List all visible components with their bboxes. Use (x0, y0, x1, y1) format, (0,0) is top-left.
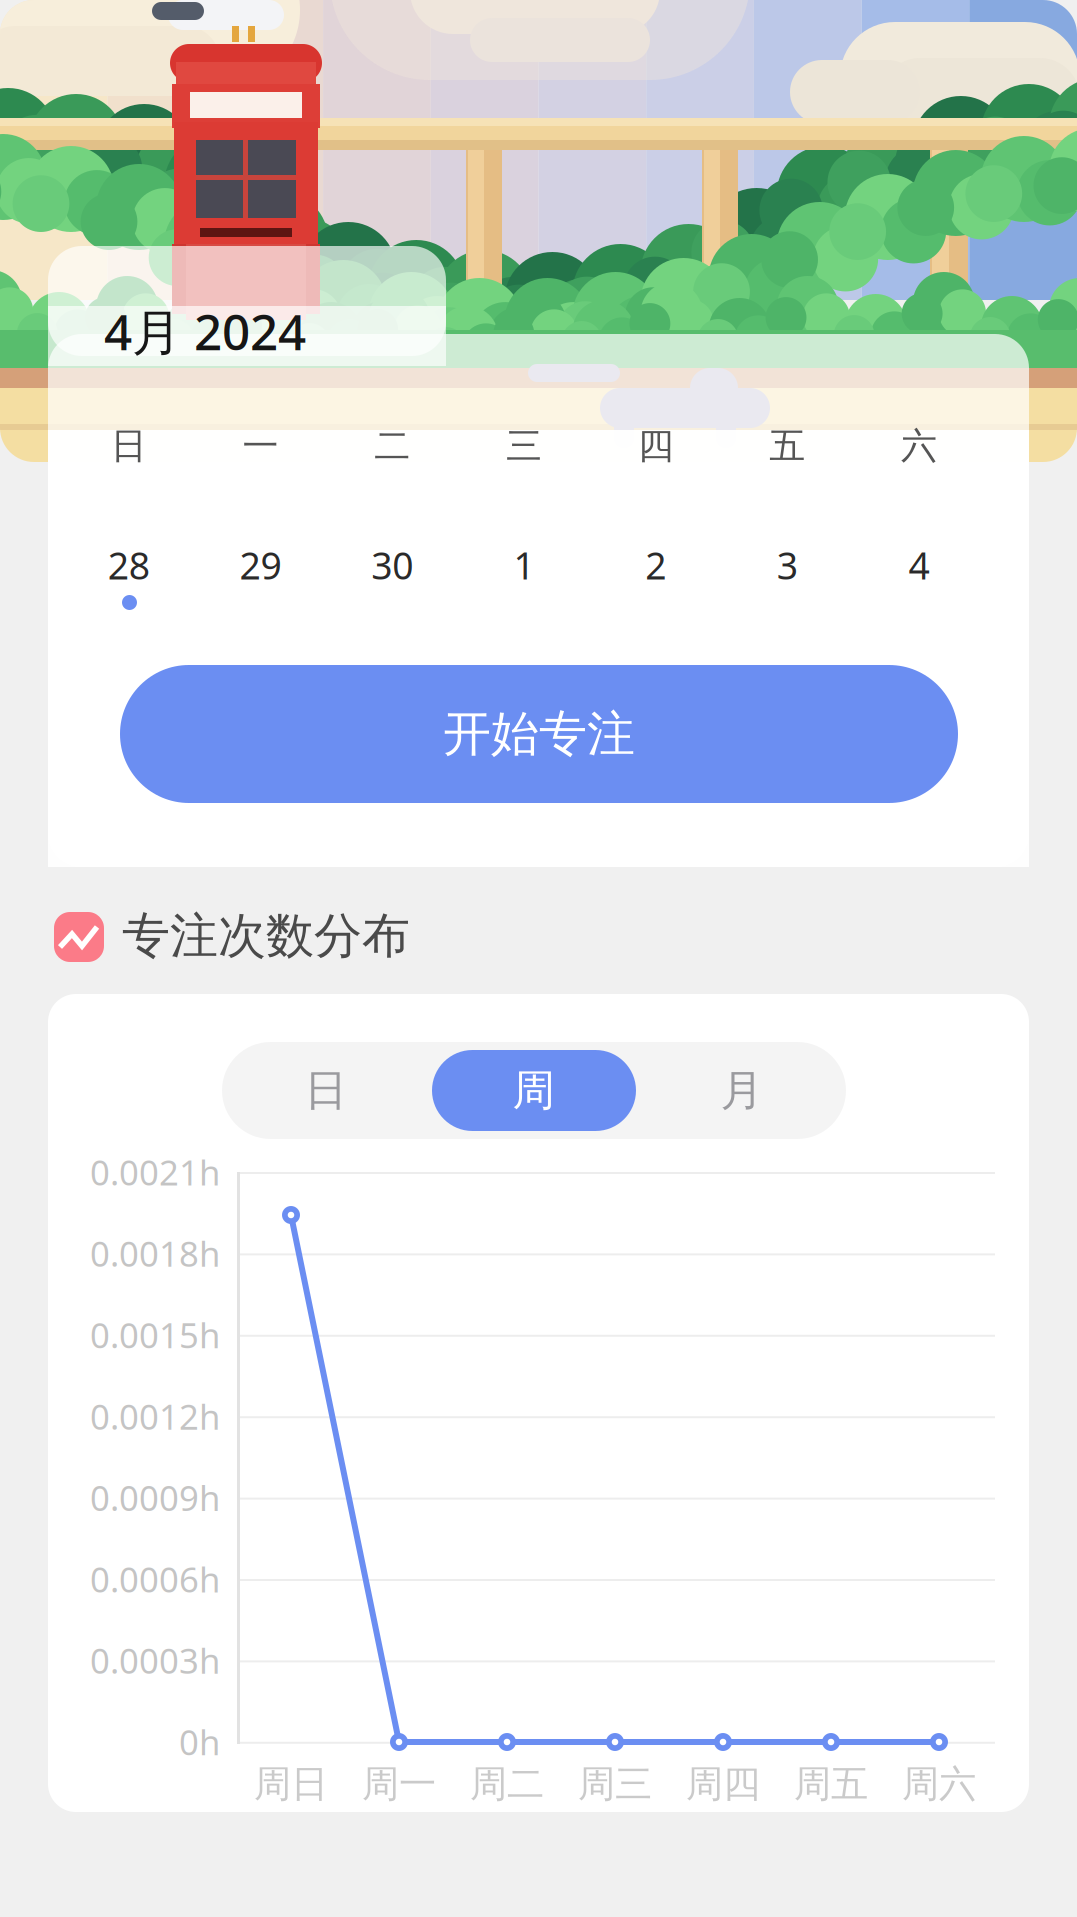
staticText: 四 (638, 424, 674, 468)
staticText: 4月 2024 (104, 298, 306, 364)
staticText: 2 (645, 540, 666, 590)
button[interactable]: 日 (222, 1042, 430, 1139)
staticText: 0.0006h (90, 1556, 220, 1602)
staticText: 五 (769, 424, 805, 468)
staticText: 0h (179, 1719, 220, 1765)
staticText: 日 (304, 1064, 347, 1117)
staticText: 3 (777, 540, 798, 590)
staticText: 六 (901, 424, 937, 468)
staticText: 周日 (254, 1761, 328, 1807)
staticText: 0.0012h (90, 1393, 220, 1439)
button[interactable]: 开始专注 (120, 665, 958, 803)
staticText: 日 (111, 424, 147, 468)
staticText: 28 (108, 540, 150, 590)
staticText: 周四 (686, 1761, 760, 1807)
button[interactable]: 月 (638, 1042, 846, 1139)
staticText: 开始专注 (443, 704, 635, 763)
staticText: 周一 (362, 1761, 436, 1807)
staticText: 30 (371, 540, 413, 590)
staticText: 0.0018h (90, 1230, 220, 1276)
staticText: 0.0021h (90, 1149, 220, 1195)
staticText: 周二 (470, 1761, 544, 1807)
staticText: 0.0015h (90, 1312, 220, 1358)
staticText: 专注次数分布 (122, 906, 410, 965)
staticText: 4 (908, 540, 929, 590)
staticText: 0.0003h (90, 1637, 220, 1683)
staticText: 周五 (794, 1761, 868, 1807)
staticText: 三 (506, 424, 542, 468)
staticText: 29 (239, 540, 281, 590)
staticText: 周六 (902, 1761, 976, 1807)
staticText: 周三 (578, 1761, 652, 1807)
staticText: 周 (512, 1064, 555, 1117)
staticText: 月 (720, 1064, 763, 1117)
staticText: 一 (242, 424, 278, 468)
button[interactable]: 周 (430, 1042, 638, 1139)
staticText: 0.0009h (90, 1475, 220, 1521)
staticText: 二 (374, 424, 410, 468)
staticText: 1 (513, 540, 534, 590)
